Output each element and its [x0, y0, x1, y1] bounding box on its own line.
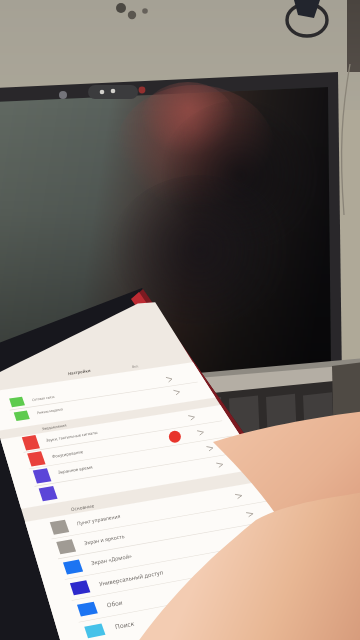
staticText: Поиск	[114, 619, 135, 631]
staticText: Универсальный доступ	[98, 568, 164, 588]
staticText: Сотовая связь	[32, 394, 55, 402]
staticText: Основные	[70, 502, 95, 513]
staticText: Пункт управления	[76, 513, 121, 527]
staticText: Обои	[106, 598, 124, 610]
button[interactable]: Настройки	[0, 0, 360, 640]
staticText: Экранное время	[57, 464, 93, 475]
staticText: Режим модема	[37, 407, 63, 415]
staticText: Экран и яркость	[83, 532, 125, 547]
staticText: Звуки, тактильные сигналы	[46, 429, 98, 442]
staticText: Экран «Домой»	[90, 552, 132, 567]
staticText: Вкл.	[132, 363, 139, 368]
staticText: Уведомления	[42, 423, 67, 431]
staticText: Фокусирование	[51, 449, 84, 459]
staticText: Настройки	[68, 368, 91, 377]
